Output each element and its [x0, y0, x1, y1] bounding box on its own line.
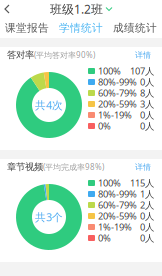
- staticText: 答对率: [7, 49, 34, 61]
- staticText: (平均答对率90%): [34, 50, 95, 60]
- staticText: 0人: [140, 109, 154, 121]
- staticText: 20%-59%: [98, 98, 137, 110]
- staticText: 0%: [98, 232, 111, 244]
- staticText: 100%: [98, 65, 121, 77]
- staticText: 0人: [140, 210, 154, 222]
- staticText: 8人: [140, 87, 154, 99]
- button[interactable]: 详情: [135, 50, 151, 60]
- staticText: 成绩统计: [113, 21, 157, 34]
- staticText: 详情: [135, 50, 151, 60]
- button[interactable]: 学情统计: [54, 21, 108, 34]
- staticText: (平均完成率98%): [43, 162, 104, 172]
- staticText: 详情: [135, 162, 151, 172]
- button[interactable]: 详情: [135, 162, 151, 172]
- button[interactable]: 班级1.2班: [50, 1, 112, 17]
- staticText: 80%-99%: [98, 188, 137, 200]
- staticText: 学情统计: [59, 21, 103, 34]
- staticText: 章节视频: [7, 161, 43, 173]
- staticText: 0%: [98, 120, 111, 132]
- staticText: 共3个: [35, 210, 63, 224]
- staticText: 2人: [140, 199, 154, 211]
- staticText: 0人: [140, 76, 154, 88]
- staticText: 60%-79%: [98, 87, 137, 99]
- staticText: 1人: [140, 188, 154, 200]
- staticText: 0人: [140, 221, 154, 233]
- staticText: 0人: [140, 232, 154, 244]
- staticText: 115人: [130, 177, 154, 189]
- staticText: 3人: [140, 98, 154, 110]
- staticText: 20%-59%: [98, 210, 137, 222]
- staticText: 共4次: [35, 98, 63, 112]
- button[interactable]: 课堂报告: [0, 21, 54, 34]
- staticText: 60%-79%: [98, 199, 137, 211]
- staticText: 100%: [98, 177, 121, 189]
- staticText: 107人: [130, 65, 154, 77]
- staticText: 班级1.2班: [50, 1, 103, 17]
- staticText: 课堂报告: [5, 21, 49, 34]
- button[interactable]: 成绩统计: [108, 21, 162, 34]
- staticText: 0人: [140, 120, 154, 132]
- staticText: 1%-19%: [98, 221, 132, 233]
- staticText: 1%-19%: [98, 109, 132, 121]
- button[interactable]: 返回: [2, 1, 18, 17]
- staticText: 80%-99%: [98, 76, 137, 88]
